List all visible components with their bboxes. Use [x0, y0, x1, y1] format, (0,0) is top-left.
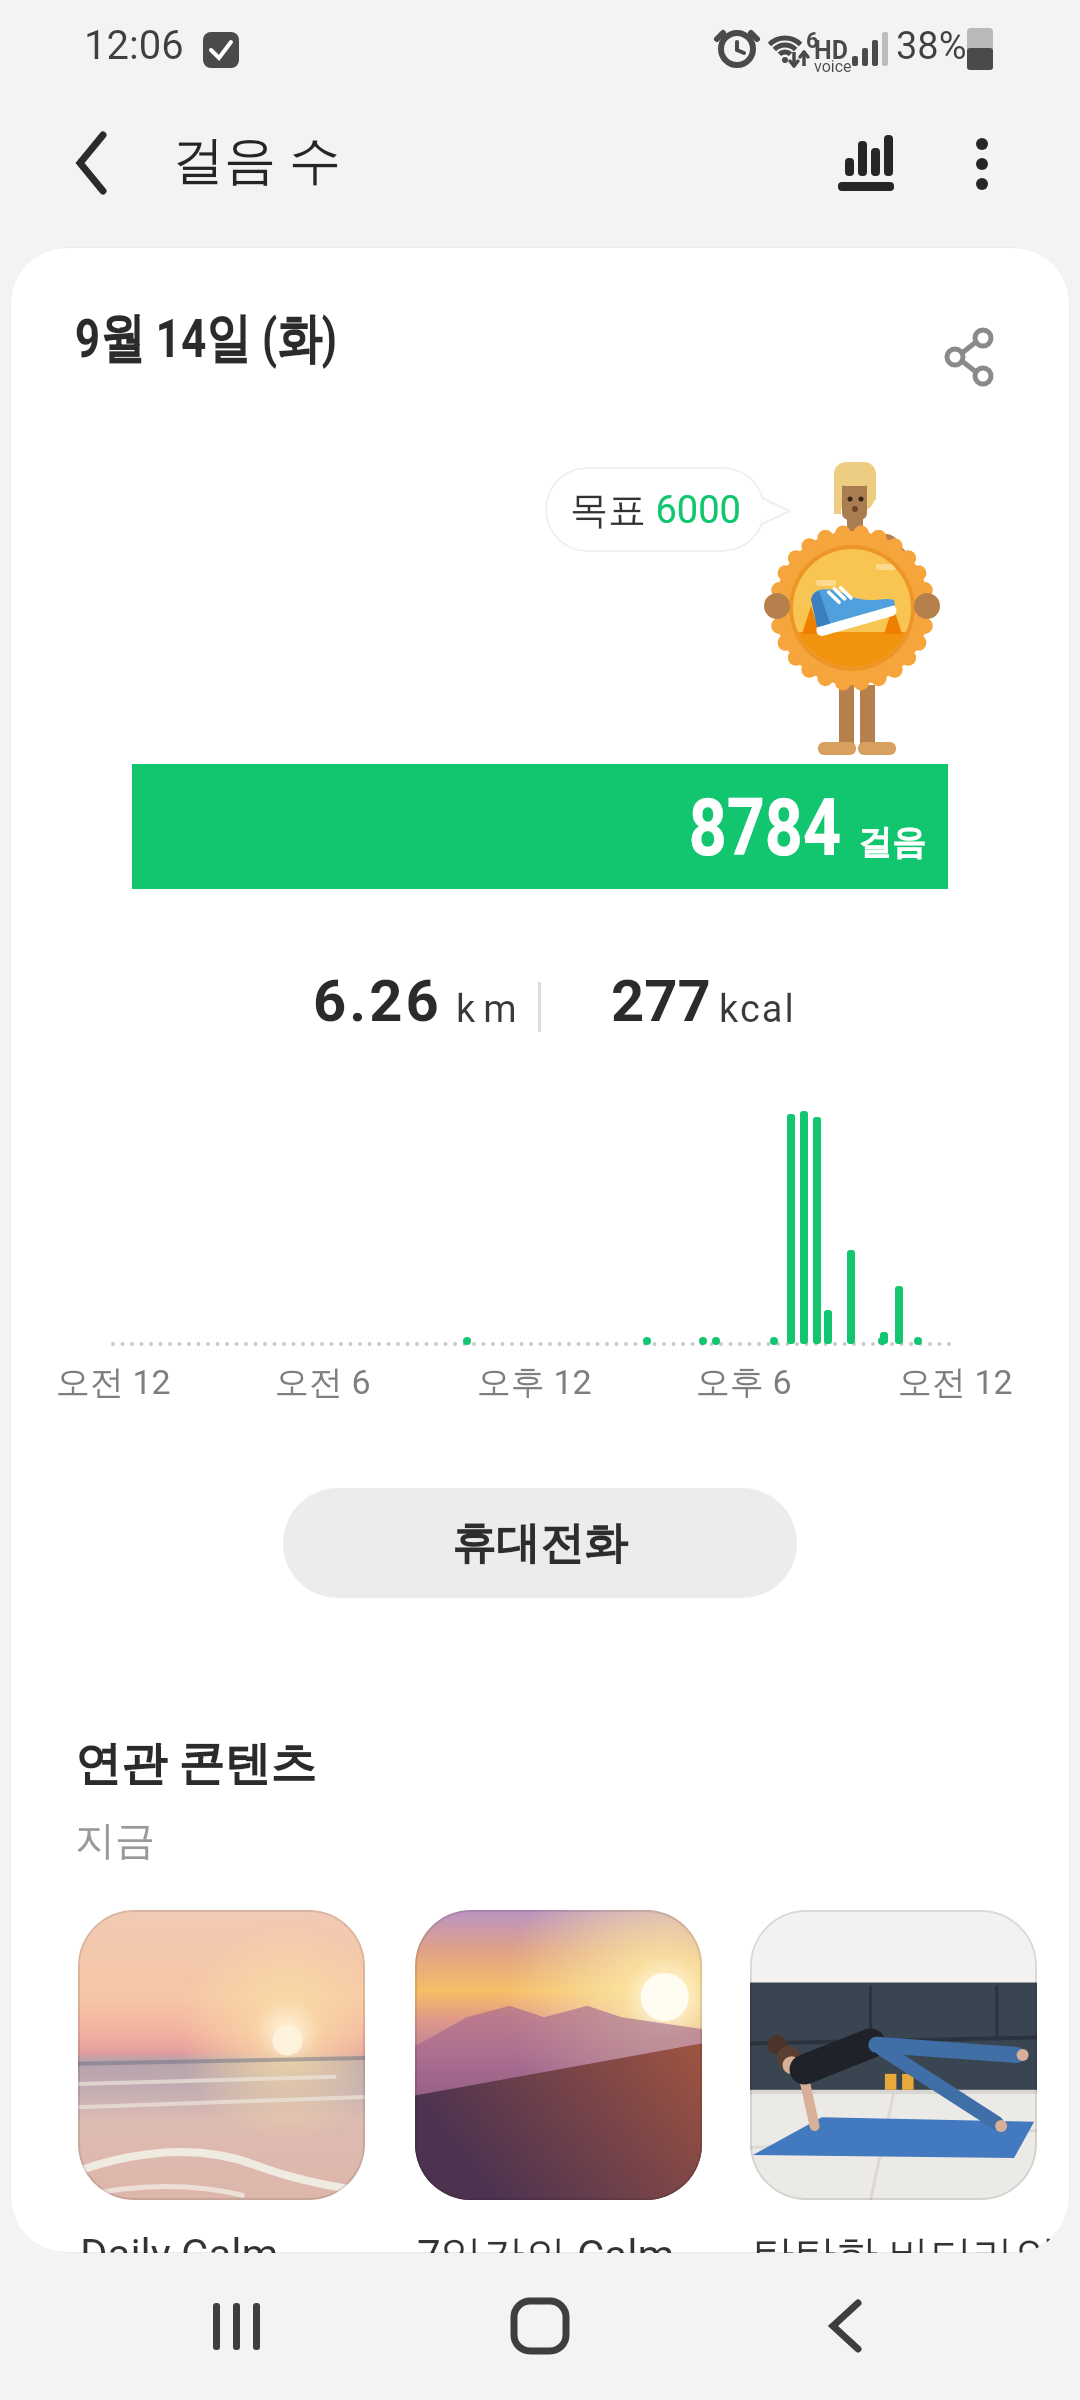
staticText: 12:06 [84, 22, 184, 69]
staticText: 38% [896, 24, 967, 69]
button[interactable] [78, 1910, 365, 2200]
staticText: 6 [806, 28, 819, 54]
button[interactable] [820, 125, 910, 205]
button[interactable]: 휴대전화 [283, 1488, 797, 1598]
staticText: 오전 6 [275, 1361, 371, 1404]
button[interactable] [750, 1910, 1037, 2200]
staticText: km [456, 987, 525, 1032]
staticText: Daily Calm [80, 2230, 279, 2253]
staticText: 오후 6 [696, 1361, 792, 1404]
staticText: 지금 [75, 1815, 155, 1865]
staticText: HD [814, 36, 848, 65]
staticText: 오전 12 [898, 1361, 1013, 1404]
staticText: 연관 콘텐츠 [75, 1735, 317, 1793]
staticText: 걸음 수 [172, 128, 341, 194]
staticText: 오전 12 [56, 1361, 171, 1404]
button[interactable] [170, 2263, 300, 2390]
staticText: voice [814, 57, 852, 76]
staticText: 277 [611, 967, 711, 1035]
button[interactable] [780, 2263, 910, 2390]
button[interactable] [475, 2263, 605, 2390]
staticText: 탄탄한 바디라인 [752, 2230, 1057, 2253]
button[interactable] [55, 125, 135, 205]
staticText: 걸음 [858, 821, 926, 864]
button[interactable] [945, 122, 1020, 207]
staticText: 휴대전화 [452, 1516, 628, 1571]
button[interactable] [415, 1910, 702, 2200]
staticText: 8784 [689, 781, 841, 875]
button[interactable] [910, 307, 1030, 407]
staticText: 7일간의 Calm [417, 2230, 675, 2253]
staticText: 목표 6000 [570, 486, 741, 534]
staticText: 오후 12 [477, 1361, 592, 1404]
staticText: 9월 14일 (화) [75, 305, 337, 373]
staticText: kcal [719, 987, 796, 1032]
staticText: 6.26 [313, 967, 442, 1035]
